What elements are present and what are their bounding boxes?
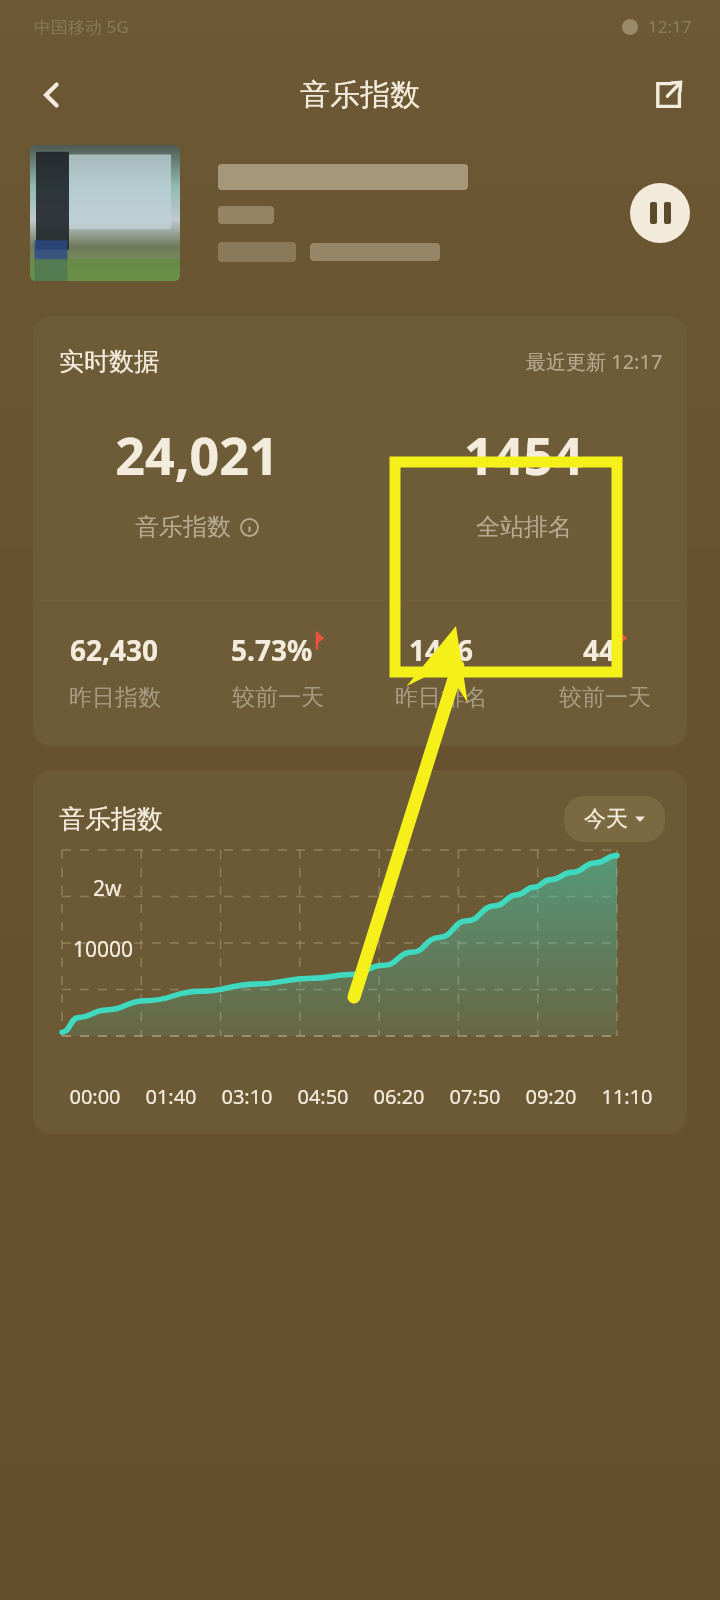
staticText: 1454 [464, 419, 583, 490]
staticText: 24,021 [115, 419, 279, 490]
staticText: 音乐指数 [135, 512, 231, 542]
staticText: 昨日指数 [69, 683, 161, 712]
button[interactable]: 今天 [564, 796, 665, 842]
staticText: 44 [583, 631, 616, 669]
staticText: 01:40 [133, 1083, 209, 1110]
staticText: 12:17 [648, 15, 692, 38]
staticText: 00:00 [57, 1083, 133, 1110]
button[interactable]: 62,430 [33, 631, 196, 712]
staticText: 全站排名 [476, 512, 572, 542]
staticText: 最近更新 12:17 [526, 348, 663, 375]
staticText: 较前一天 [232, 683, 324, 712]
staticText: 实时数据 [59, 346, 159, 377]
staticText: 昨日排名 [395, 683, 487, 712]
staticText: 5.73% [231, 631, 313, 669]
staticText: 09:20 [513, 1083, 589, 1110]
staticText: 11:10 [589, 1083, 665, 1110]
button[interactable]: 24,021 [33, 419, 360, 542]
button[interactable]: 1454 [360, 419, 687, 542]
staticText: 10000 [73, 935, 134, 964]
staticText: 今天 [584, 805, 628, 833]
staticText: 音乐指数 [300, 76, 420, 114]
button[interactable]: 返回 [24, 67, 80, 123]
staticText: 1416 [409, 631, 474, 669]
button[interactable]: 1416 [359, 631, 523, 712]
button[interactable]: 分享 [640, 67, 696, 123]
staticText: 07:50 [437, 1083, 513, 1110]
staticText: 音乐指数 [59, 803, 163, 836]
staticText: 中国移动 5G [34, 15, 129, 38]
staticText: 03:10 [209, 1083, 285, 1110]
button[interactable]: 44 [523, 631, 687, 712]
button[interactable]: 5.73% [196, 631, 359, 712]
button[interactable]: 暂停 [630, 183, 690, 243]
staticText: 2w [93, 874, 122, 903]
staticText: 较前一天 [559, 683, 651, 712]
staticText: 06:20 [361, 1083, 437, 1110]
staticText: 62,430 [70, 631, 159, 669]
button[interactable]: 暂停 [0, 138, 720, 288]
staticText: 04:50 [285, 1083, 361, 1110]
